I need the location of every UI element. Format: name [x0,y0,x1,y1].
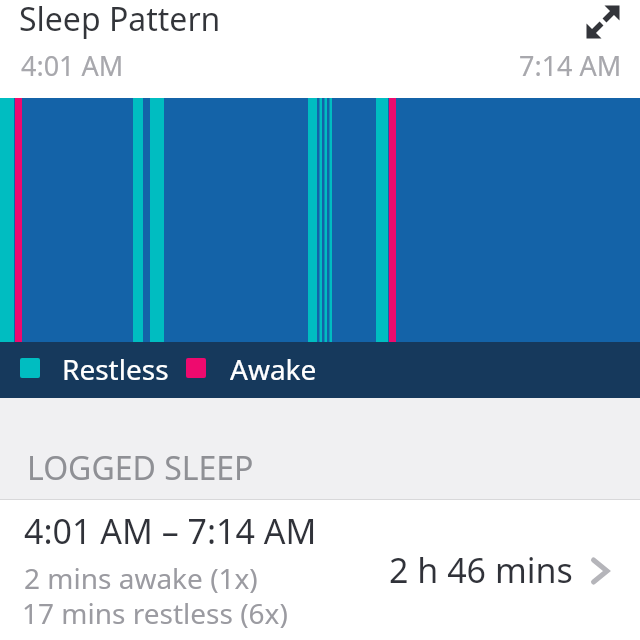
staticText: 4:01 AM [21,47,124,84]
staticText: Awake [230,350,317,388]
staticText: 17 mins restless (6x) [22,594,288,632]
staticText: LOGGED SLEEP [27,446,254,490]
button[interactable]: 4:01 AM – 7:14 AM [0,500,640,640]
staticText: 2 mins awake (1x) [24,559,258,597]
staticText: Restless [62,350,169,388]
staticText: 7:14 AM [519,47,622,84]
staticText: 2 h 46 mins [389,547,573,593]
staticText: 4:01 AM – 7:14 AM [24,508,317,554]
staticText: Sleep Pattern [19,0,221,41]
button[interactable] [582,1,624,43]
